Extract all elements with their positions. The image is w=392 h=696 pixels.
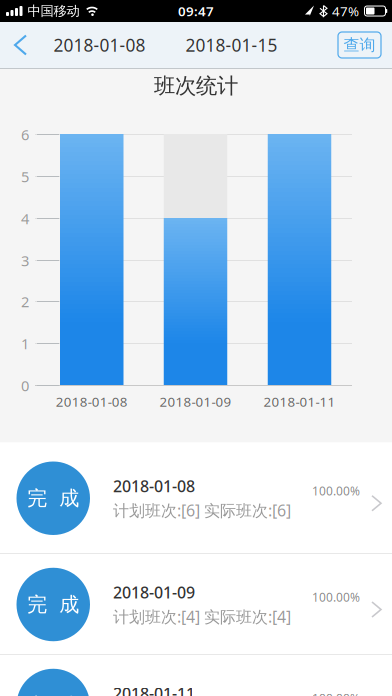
button[interactable]: Back [0,22,38,68]
staticText: 47% [332,2,359,20]
button[interactable]: 完 成 [0,655,392,696]
staticText: 完 成 [27,486,79,511]
staticText: 2018-01-15 [185,33,277,56]
staticText: 班次统计 [154,73,238,99]
staticText: 6 [21,125,29,144]
staticText: 4 [21,209,29,228]
staticText: 完 成 [27,693,79,696]
button[interactable]: 完 成 [0,554,392,655]
staticText: 2018-01-08 [53,33,145,56]
staticText: 100.00% [312,483,360,499]
button[interactable]: 完 成 [0,442,392,554]
staticText: 2018-01-11 [263,393,335,410]
staticText: 计划班次:[6] 实际班次:[6] [113,500,291,521]
button[interactable]: 查询 [338,32,381,58]
staticText: 2018-01-09 [159,393,231,410]
staticText: 100.00% [312,589,360,605]
staticText: 完 成 [27,592,79,617]
staticText: 3 [21,251,29,270]
staticText: 2018-01-11 [113,683,195,696]
staticText: 2018-01-08 [56,393,128,410]
staticText: 0 [21,376,29,395]
staticText: 中国移动 [27,3,79,19]
staticText: 1 [21,334,29,353]
staticText: 09:47 [178,2,214,20]
staticText: 5 [21,167,29,186]
button[interactable]: 2018-01-08 [53,33,145,56]
button[interactable]: 2018-01-15 [185,33,277,56]
staticText: 2018-01-08 [113,475,195,497]
staticText: 查询 [343,35,375,55]
staticText: 2018-01-09 [113,582,195,603]
staticText: 2 [21,292,29,311]
staticText: 计划班次:[4] 实际班次:[4] [113,606,291,627]
staticText: 100.00% [312,690,360,696]
